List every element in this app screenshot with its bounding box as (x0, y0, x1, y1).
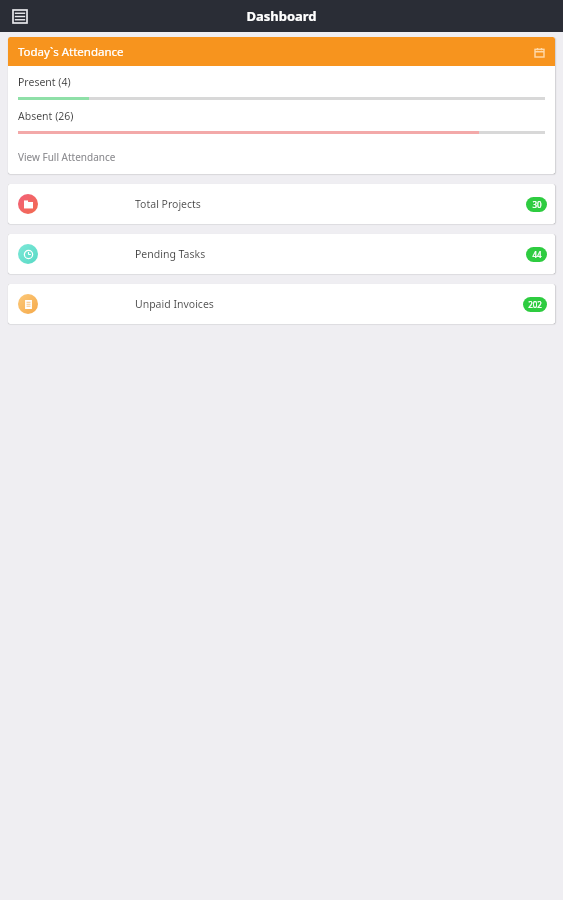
button[interactable]: View Full Attendance (8, 150, 555, 174)
staticText: Absent (26) (18, 109, 74, 123)
staticText: 30 (532, 199, 542, 210)
staticText: Pending Tasks (135, 247, 206, 261)
staticText: 202 (528, 299, 542, 310)
staticText: Dashboard (246, 7, 317, 25)
staticText: Total Projects (135, 197, 201, 211)
staticText: 44 (532, 249, 542, 260)
button[interactable]: Unpaid Invoices (8, 284, 555, 324)
button[interactable]: Today`s Attendance (8, 37, 555, 66)
staticText: Present (4) (18, 75, 71, 89)
staticText: View Full Attendance (18, 150, 116, 164)
button[interactable]: Total Projects (8, 184, 555, 224)
staticText: Today`s Attendance (18, 44, 124, 60)
button[interactable]: Open navigation menu (6, 2, 34, 30)
button[interactable]: Refresh attendance (529, 42, 549, 62)
staticText: Unpaid Invoices (135, 297, 214, 311)
button[interactable]: Pending Tasks (8, 234, 555, 274)
